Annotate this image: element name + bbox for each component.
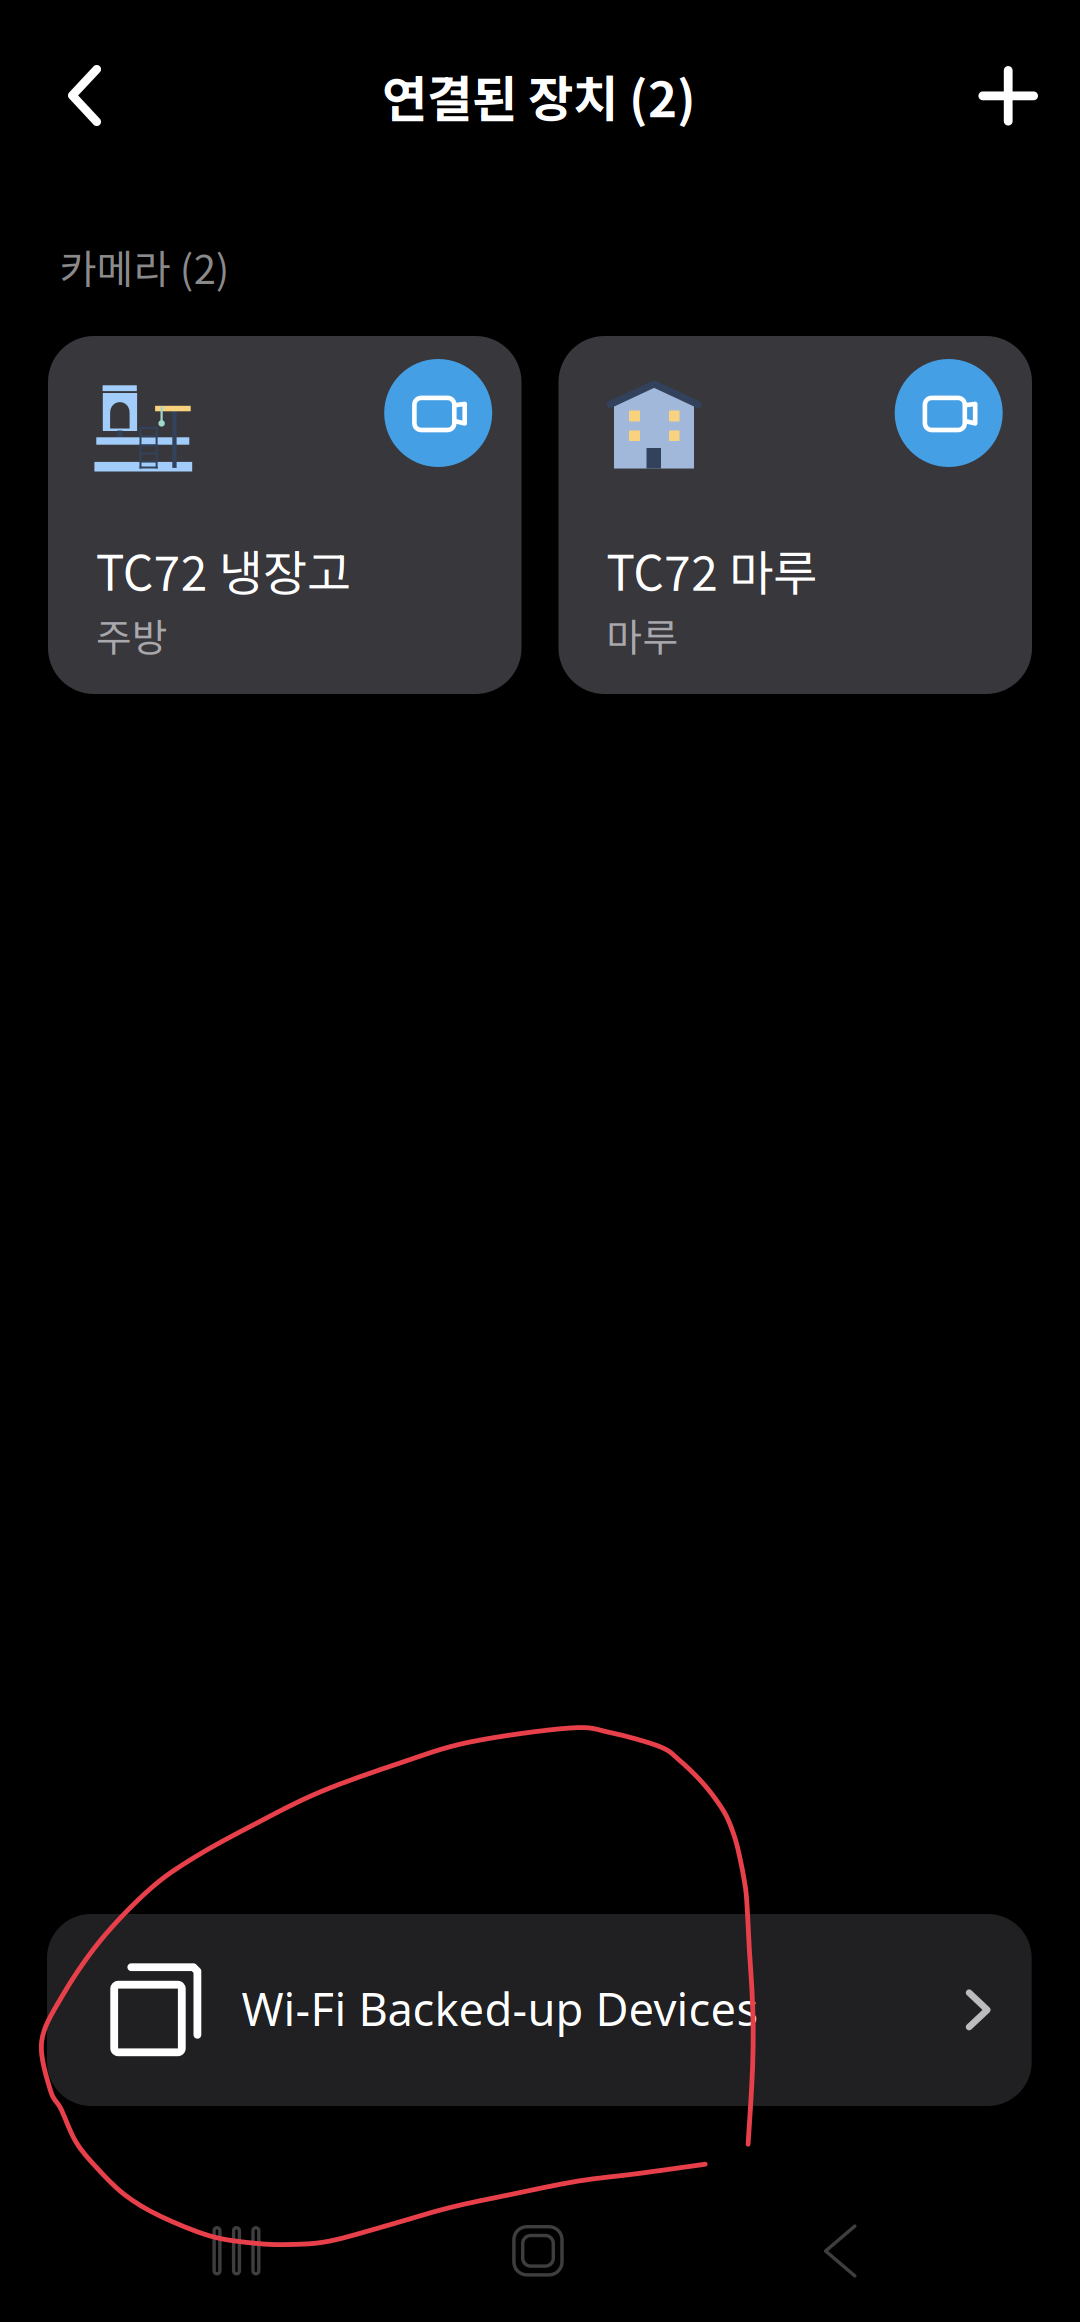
button[interactable]: Add device	[948, 36, 1068, 156]
staticText: TC72 마루	[606, 535, 817, 604]
button[interactable]: Home	[512, 2225, 564, 2277]
button[interactable]: Back	[824, 2224, 856, 2278]
button[interactable]: TC72 마루	[558, 336, 1032, 694]
staticText: 카메라 (2)	[60, 237, 230, 295]
button[interactable]: Recents	[212, 2226, 260, 2275]
staticText: TC72 냉장고	[96, 535, 351, 604]
staticText: 마루	[606, 607, 678, 663]
staticText: 주방	[96, 607, 168, 663]
button[interactable]: Wi-Fi Backed-up Devices	[47, 1914, 1032, 2106]
button[interactable]: TC72 냉장고	[48, 336, 521, 694]
staticText: 연결된 장치 (2)	[382, 60, 696, 131]
staticText: Wi-Fi Backed-up Devices	[241, 1978, 758, 2039]
button[interactable]: Back	[24, 35, 144, 155]
